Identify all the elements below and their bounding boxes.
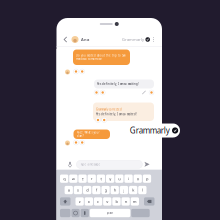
staticText: Yes definitely, I am so exciting! [97,82,139,86]
button[interactable]: Shift [60,197,70,206]
staticText: q [63,176,65,181]
staticText: s [77,187,79,193]
staticText: l [142,187,143,193]
button[interactable]: d [83,186,91,194]
button[interactable]: z [75,197,84,206]
staticText: n [125,199,127,204]
staticText: Ana [81,37,89,42]
staticText: o [137,176,139,181]
button[interactable]: g [101,186,110,194]
button[interactable]: Back [61,34,70,45]
button[interactable]: c [94,197,102,206]
button[interactable]: y [106,174,114,183]
staticText: b [115,199,117,204]
staticText: k [132,187,134,193]
staticText: a [68,187,70,193]
staticText: Grammarly [122,37,144,42]
button[interactable]: t [97,174,105,183]
button[interactable]: Return [131,209,150,217]
button[interactable]: w [69,174,77,183]
button[interactable]: Grammarly [128,123,180,137]
button[interactable]: r [88,174,96,183]
button[interactable]: Delete [144,197,154,206]
button[interactable]: u [115,174,123,183]
button[interactable]: n [121,197,130,206]
staticText: Grammarly [130,125,170,136]
staticText: m [133,199,137,204]
button[interactable]: Dictate [81,209,89,217]
staticText: z [79,199,81,204]
button[interactable]: More options [150,34,157,45]
button[interactable]: k [129,186,137,194]
staticText: u [118,176,120,181]
staticText: i [128,176,129,181]
staticText: e [82,176,84,181]
staticText: Yes definitely, I am so excited! [96,112,137,116]
button[interactable]: v [103,197,111,206]
staticText: f [96,187,97,193]
button[interactable]: q [60,174,68,183]
button[interactable]: o [134,174,142,183]
button[interactable]: b [112,197,121,206]
staticText: space [107,211,114,215]
staticText: h [114,187,116,193]
staticText: Do you excited about the trip to San Fra… [76,54,126,61]
staticText: r [91,176,93,181]
button[interactable]: a [65,186,73,194]
staticText: v [106,199,108,204]
staticText: t [100,176,101,181]
staticText: g [105,187,107,193]
staticText: x [88,199,90,204]
button[interactable]: i [124,174,133,183]
staticText: w [72,176,75,181]
button[interactable]: s [74,186,82,194]
button[interactable]: m [131,197,139,206]
staticText: c [97,199,99,204]
button[interactable]: Emoji [71,209,80,217]
staticText: p [146,176,148,181]
staticText: Nice! What's your plan? [76,131,99,138]
staticText: Type a message [80,163,100,166]
button[interactable]: j [120,186,128,194]
button[interactable]: Send [143,160,150,168]
button[interactable]: x [85,197,93,206]
button[interactable]: f [92,186,100,194]
staticText: y [109,176,111,181]
button[interactable]: h [111,186,119,194]
button[interactable]: l [138,186,146,194]
staticText: Grammarly corrected [96,108,122,111]
staticText: d [86,187,88,193]
button[interactable]: p [143,174,151,183]
button[interactable]: e [78,174,87,183]
